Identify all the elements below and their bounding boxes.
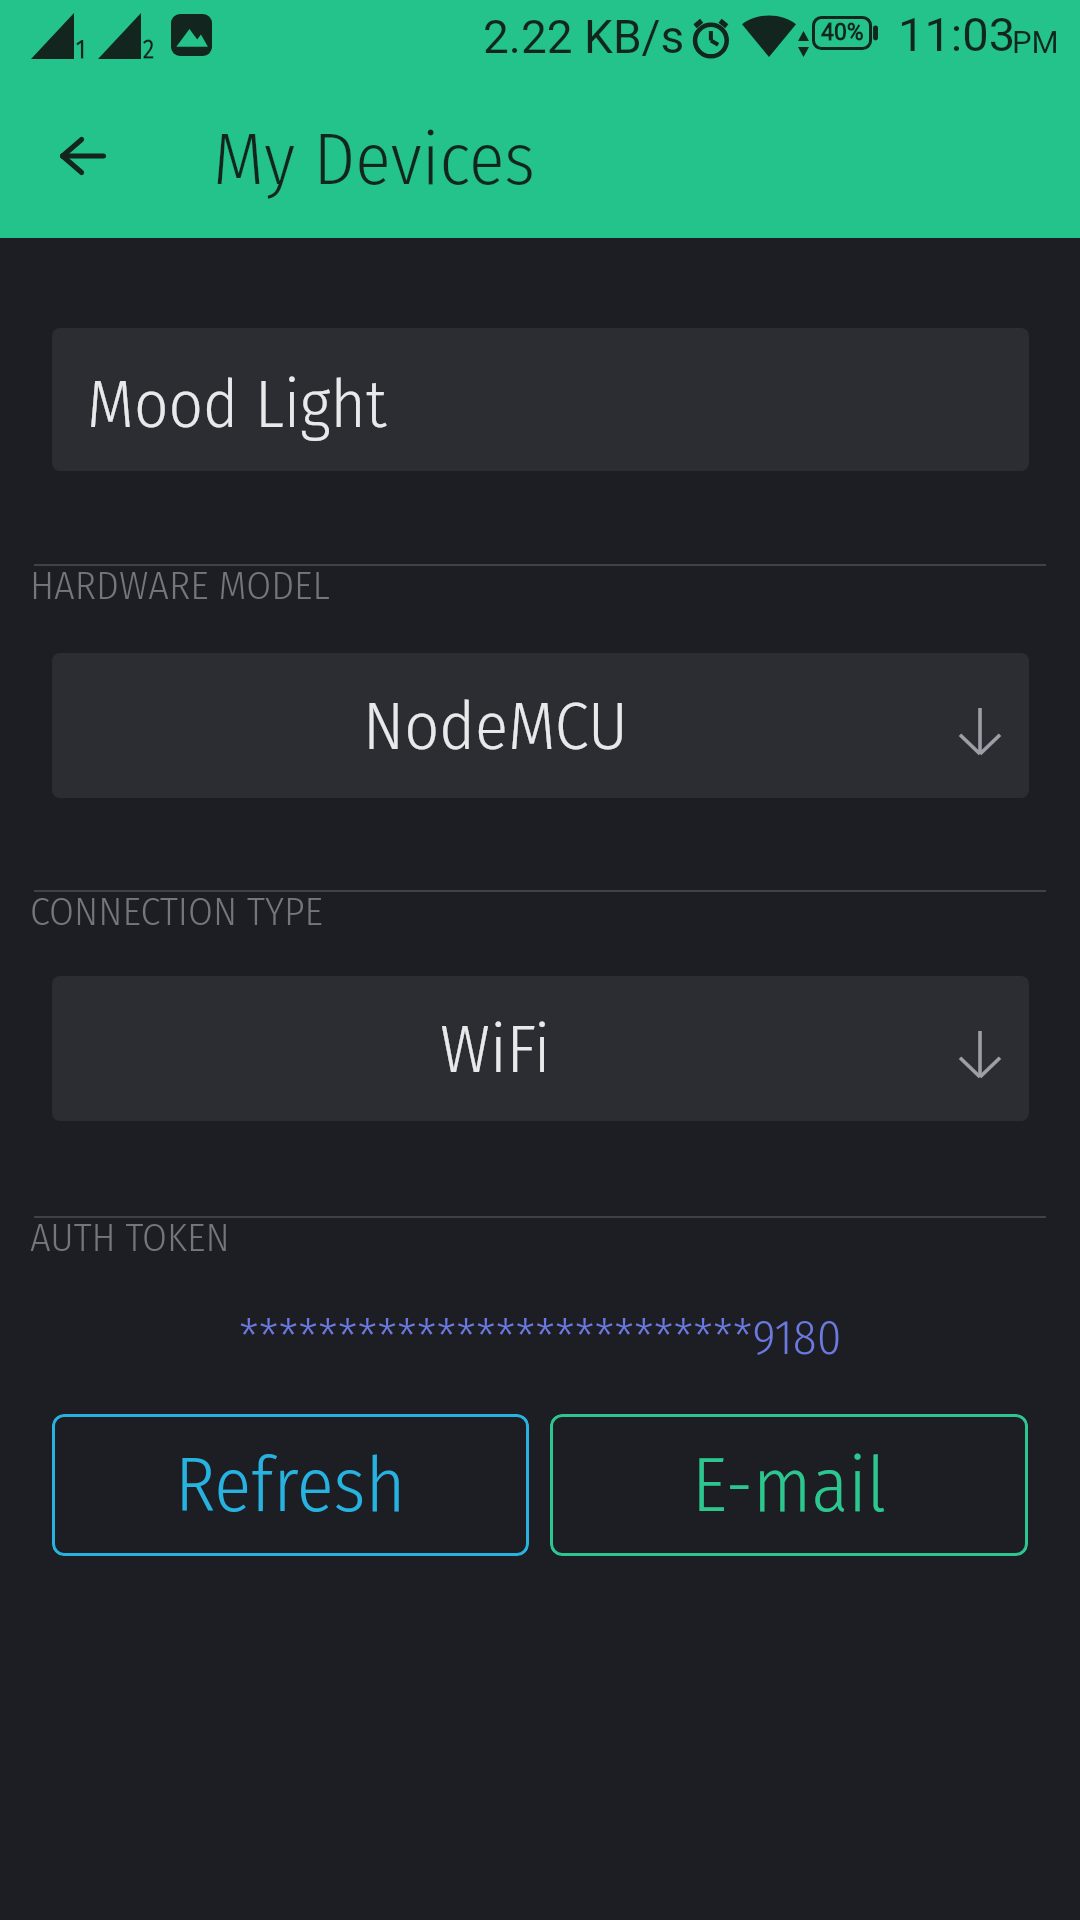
staticText: PM <box>1012 24 1059 60</box>
staticText: AUTH TOKEN <box>30 1214 230 1262</box>
button[interactable]: Refresh <box>52 1414 529 1556</box>
button[interactable]: E-mail <box>550 1414 1028 1556</box>
button[interactable]: WiFi <box>52 976 1029 1121</box>
staticText: HARDWARE MODEL <box>30 562 330 610</box>
staticText: 2.22 KB/s <box>483 10 685 64</box>
staticText: **************************9180 <box>239 1308 842 1367</box>
staticText: 40% <box>821 19 864 46</box>
staticText: Mood Light <box>87 364 387 444</box>
staticText: My Devices <box>213 116 535 204</box>
staticText: 11:03 <box>898 7 1016 62</box>
staticText: E-mail <box>692 1440 887 1531</box>
staticText: 2 <box>143 34 155 65</box>
button[interactable]: Mood Light <box>52 328 1029 471</box>
staticText: WiFi <box>440 1008 551 1090</box>
staticText: NodeMCU <box>363 685 628 767</box>
staticText: Refresh <box>175 1440 406 1531</box>
staticText: CONNECTION TYPE <box>30 888 323 936</box>
button[interactable]: Back <box>29 102 137 210</box>
staticText: 1 <box>76 34 86 65</box>
button[interactable]: NodeMCU <box>52 653 1029 798</box>
